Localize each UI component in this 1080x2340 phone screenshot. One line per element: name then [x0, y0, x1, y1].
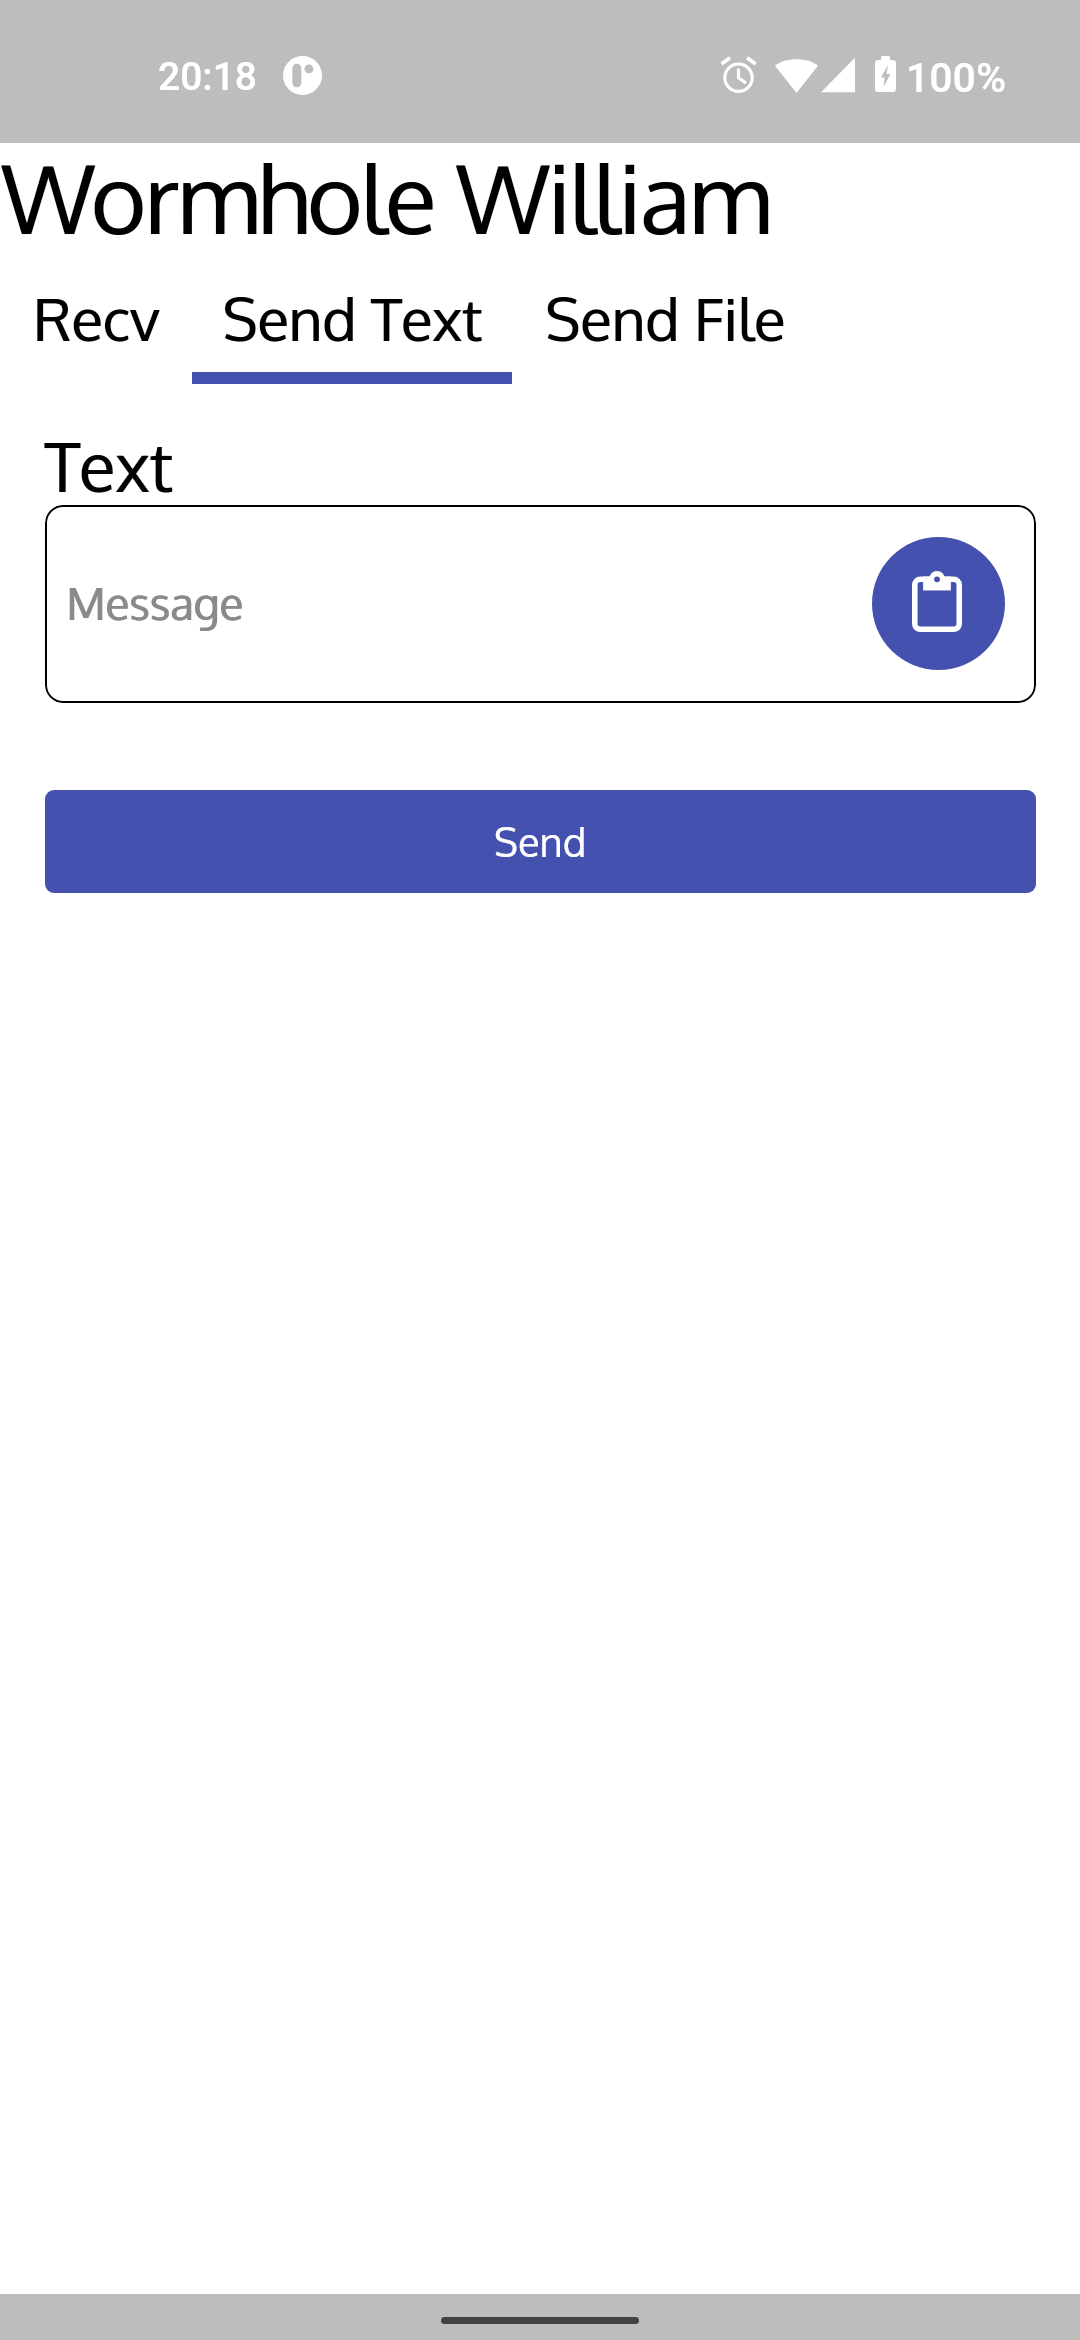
staticText: Text	[44, 423, 173, 508]
staticText: Send Text	[223, 281, 483, 354]
button[interactable]: Send Text	[192, 252, 512, 382]
staticText: 20:18	[158, 54, 258, 100]
button[interactable]: Send File	[512, 252, 818, 382]
staticText: 100%	[906, 54, 1007, 102]
staticText: Text	[45, 423, 174, 508]
staticText: Recv	[34, 281, 160, 354]
staticText: Send File	[546, 281, 786, 354]
staticText: Recv	[33, 281, 159, 354]
button[interactable]: Paste from clipboard	[872, 537, 1005, 670]
staticText: Wormhole William	[1, 136, 769, 256]
button[interactable]: Message	[45, 505, 1036, 703]
staticText: Wormhole William	[2, 136, 770, 256]
staticText: Message	[67, 575, 244, 631]
staticText: Send Text	[222, 281, 482, 354]
staticText: Send File	[545, 281, 785, 354]
button[interactable]: Send	[45, 790, 1036, 893]
staticText: Message	[66, 575, 243, 631]
staticText: Send	[494, 816, 587, 867]
button[interactable]: Recv	[0, 252, 192, 382]
